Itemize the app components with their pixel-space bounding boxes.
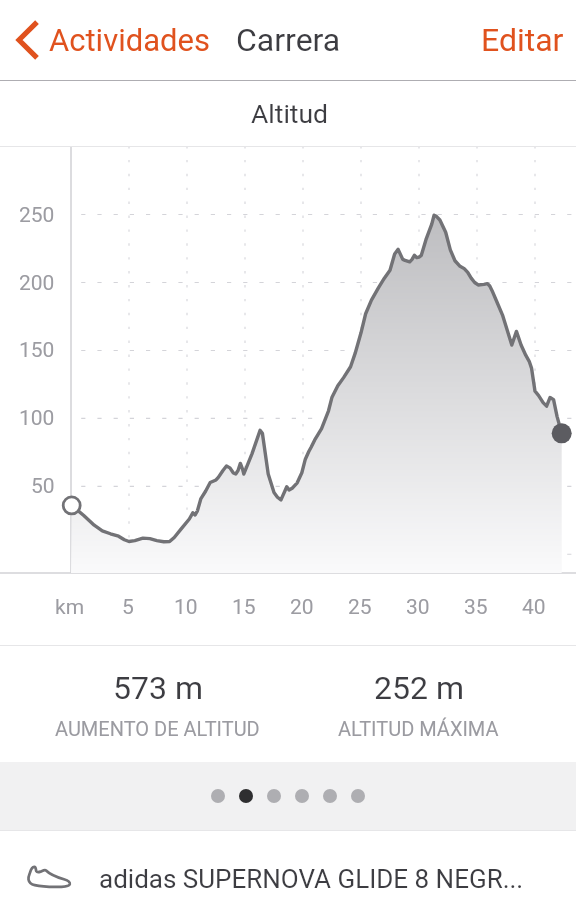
- staticText: 10: [174, 595, 198, 620]
- staticText: 40: [522, 595, 546, 620]
- button[interactable]: adidas SUPERNOVA GLIDE 8 NEGR...: [0, 831, 576, 899]
- staticText: Actividades: [49, 22, 210, 58]
- staticText: 35: [464, 595, 488, 620]
- staticText: 20: [290, 595, 314, 620]
- button[interactable]: 252 m: [288, 646, 549, 762]
- staticText: 200: [19, 271, 55, 296]
- staticText: AUMENTO DE ALTITUD: [55, 717, 260, 740]
- staticText: 30: [406, 595, 430, 620]
- staticText: 250: [19, 203, 55, 228]
- button[interactable]: 573 m: [27, 646, 288, 762]
- staticText: 100: [19, 406, 55, 431]
- staticText: 150: [19, 338, 55, 363]
- button[interactable]: Actividades: [0, 10, 222, 70]
- staticText: Carrera: [236, 21, 341, 59]
- staticText: 25: [348, 595, 372, 620]
- button[interactable]: Editar: [463, 11, 576, 69]
- staticText: adidas SUPERNOVA GLIDE 8 NEGR...: [99, 864, 524, 894]
- staticText: Altitud: [251, 98, 329, 129]
- staticText: 50: [31, 474, 55, 499]
- staticText: 573 m: [113, 669, 203, 707]
- staticText: 5: [122, 595, 134, 620]
- staticText: 252 m: [374, 669, 464, 707]
- staticText: km: [55, 595, 85, 620]
- staticText: Editar: [481, 21, 564, 59]
- staticText: ALTITUD MÁXIMA: [338, 717, 499, 740]
- staticText: 15: [232, 595, 256, 620]
